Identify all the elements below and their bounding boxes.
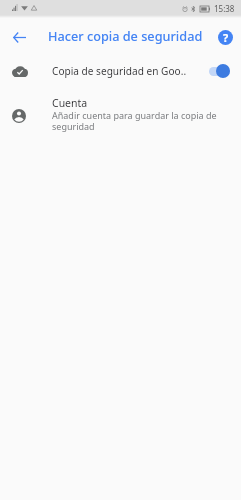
staticText: Añadir cuenta para guardar la copia de s… <box>52 109 219 133</box>
staticText: Copia de seguridad en Goo.. <box>52 64 187 78</box>
staticText: Hacer copia de seguridad <box>48 27 203 44</box>
button[interactable]: Copia de seguridad en Google Drive <box>198 55 241 87</box>
button[interactable]: Help <box>210 22 240 52</box>
button[interactable]: Copia de seguridad en Goo.. <box>0 55 241 87</box>
staticText: 15:38 <box>214 3 235 14</box>
button[interactable]: Back <box>4 22 35 53</box>
staticText: ? <box>223 30 229 45</box>
staticText: Cuenta <box>52 96 88 110</box>
button[interactable]: Cuenta <box>0 92 241 134</box>
